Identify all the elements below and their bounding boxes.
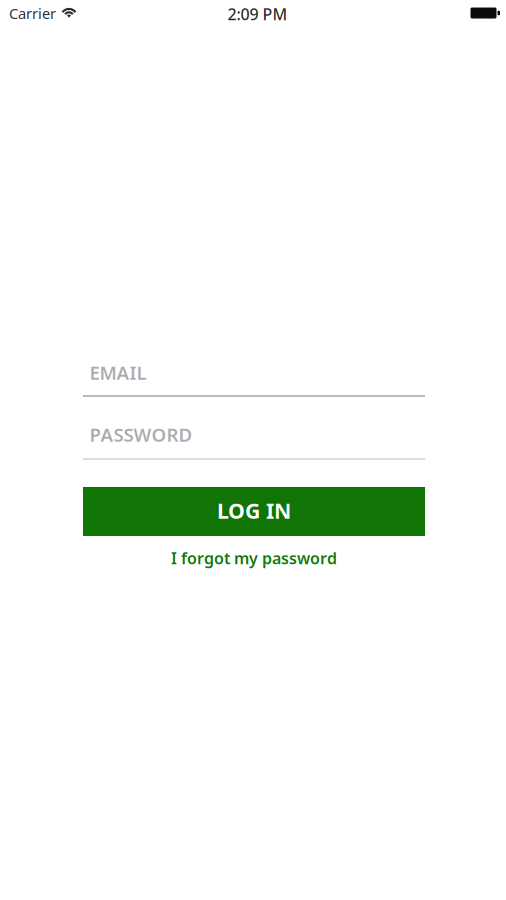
- staticText: PASSWORD: [89, 422, 192, 447]
- staticText: I forgot my password: [171, 547, 337, 569]
- staticText: 2:09 PM: [227, 3, 287, 25]
- button[interactable]: EMAIL: [83, 356, 425, 397]
- button[interactable]: LOG IN: [83, 487, 425, 536]
- staticText: Carrier: [9, 3, 56, 23]
- staticText: LOG IN: [217, 496, 291, 525]
- staticText: EMAIL: [89, 360, 146, 385]
- button[interactable]: PASSWORD: [83, 418, 425, 460]
- button[interactable]: I forgot my password: [83, 548, 425, 568]
